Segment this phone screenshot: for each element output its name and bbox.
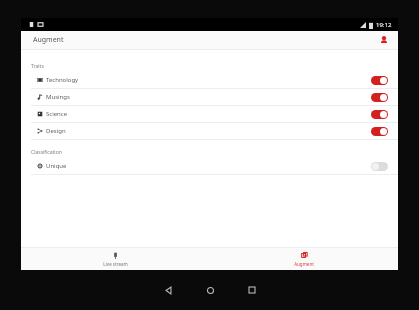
staticText: Science [46, 110, 68, 118]
button[interactable]: Science [21, 106, 398, 122]
staticText: Augment [294, 261, 314, 267]
button[interactable]: Technology [21, 72, 398, 88]
staticText: Technology [46, 76, 79, 84]
staticText: Live stream [103, 261, 128, 267]
staticText: Musings [46, 93, 70, 101]
button[interactable]: Back [159, 281, 177, 299]
staticText: Unique [46, 162, 67, 170]
button[interactable]: On [371, 127, 388, 136]
button[interactable]: On [371, 93, 388, 102]
staticText: Classification [31, 149, 62, 156]
button[interactable]: Home [201, 281, 219, 299]
button[interactable]: Off [371, 162, 388, 171]
button[interactable]: On [371, 110, 388, 119]
button[interactable]: Live stream [21, 248, 209, 270]
staticText: Traits [31, 63, 44, 70]
staticText: 19:12 [376, 21, 392, 29]
button[interactable]: Augment [209, 248, 398, 270]
button[interactable]: Recent apps [243, 281, 261, 299]
button[interactable]: Design [21, 123, 398, 139]
staticText: Augment [33, 35, 64, 45]
button[interactable]: Account [376, 32, 392, 48]
button[interactable]: Musings [21, 89, 398, 105]
staticText: Design [46, 127, 66, 135]
button[interactable]: Unique [21, 158, 398, 174]
button[interactable]: On [371, 76, 388, 85]
